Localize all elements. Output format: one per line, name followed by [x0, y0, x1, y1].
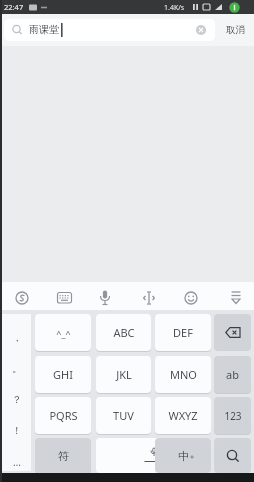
staticText: 22:47 — [4, 2, 24, 12]
staticText: ？ — [12, 393, 22, 406]
button[interactable]: ^_^ — [35, 314, 91, 351]
button[interactable]: ？ — [2, 384, 31, 415]
staticText: ， — [12, 331, 22, 344]
button[interactable]: WXYZ — [155, 397, 211, 434]
button[interactable]: 。 — [2, 353, 31, 384]
button[interactable]: MNO — [155, 356, 211, 393]
button[interactable]: … — [2, 446, 31, 477]
button[interactable] — [57, 292, 72, 304]
staticText: ^_^ — [56, 327, 71, 339]
staticText: TUV — [113, 408, 134, 423]
button[interactable] — [214, 314, 251, 351]
staticText: 取消 — [226, 24, 245, 36]
button[interactable]: ， — [2, 322, 31, 353]
button[interactable]: ！ — [2, 415, 31, 446]
staticText: WXYZ — [168, 408, 198, 423]
staticText: DEF — [173, 325, 193, 340]
button[interactable] — [229, 291, 243, 305]
button[interactable] — [99, 290, 111, 306]
button[interactable]: ab — [214, 356, 251, 393]
button[interactable] — [15, 291, 29, 305]
button[interactable] — [184, 291, 199, 306]
button[interactable]: DEF — [155, 314, 211, 351]
staticText: … — [13, 455, 21, 469]
button[interactable]: GHI — [35, 356, 91, 393]
staticText: ！ — [12, 424, 22, 437]
staticText: JKL — [116, 367, 132, 382]
button[interactable]: 符 — [35, 438, 91, 473]
button[interactable]: ABC — [96, 314, 151, 351]
button[interactable]: 中 — [155, 438, 211, 473]
button[interactable]: 123 — [214, 397, 251, 434]
staticText: 中 — [178, 449, 189, 463]
button[interactable] — [214, 438, 251, 473]
staticText: ABC — [113, 325, 135, 340]
staticText: PQRS — [49, 408, 78, 423]
button[interactable]: 取消 — [219, 19, 251, 41]
staticText: 123 — [224, 409, 242, 423]
button[interactable]: PQRS — [35, 397, 91, 434]
button[interactable]: JKL — [96, 356, 151, 393]
staticText: ab — [226, 367, 239, 382]
button[interactable] — [96, 438, 211, 473]
staticText: GHI — [53, 367, 73, 382]
button[interactable]: 雨课堂 — [4, 19, 215, 41]
staticText: 符 — [58, 449, 69, 463]
button[interactable] — [142, 291, 156, 305]
button[interactable]: TUV — [96, 397, 151, 434]
staticText: 1.4K/s — [164, 3, 185, 13]
staticText: MNO — [170, 367, 197, 382]
staticText: 雨课堂 — [29, 23, 59, 36]
staticText: 。 — [12, 362, 22, 375]
